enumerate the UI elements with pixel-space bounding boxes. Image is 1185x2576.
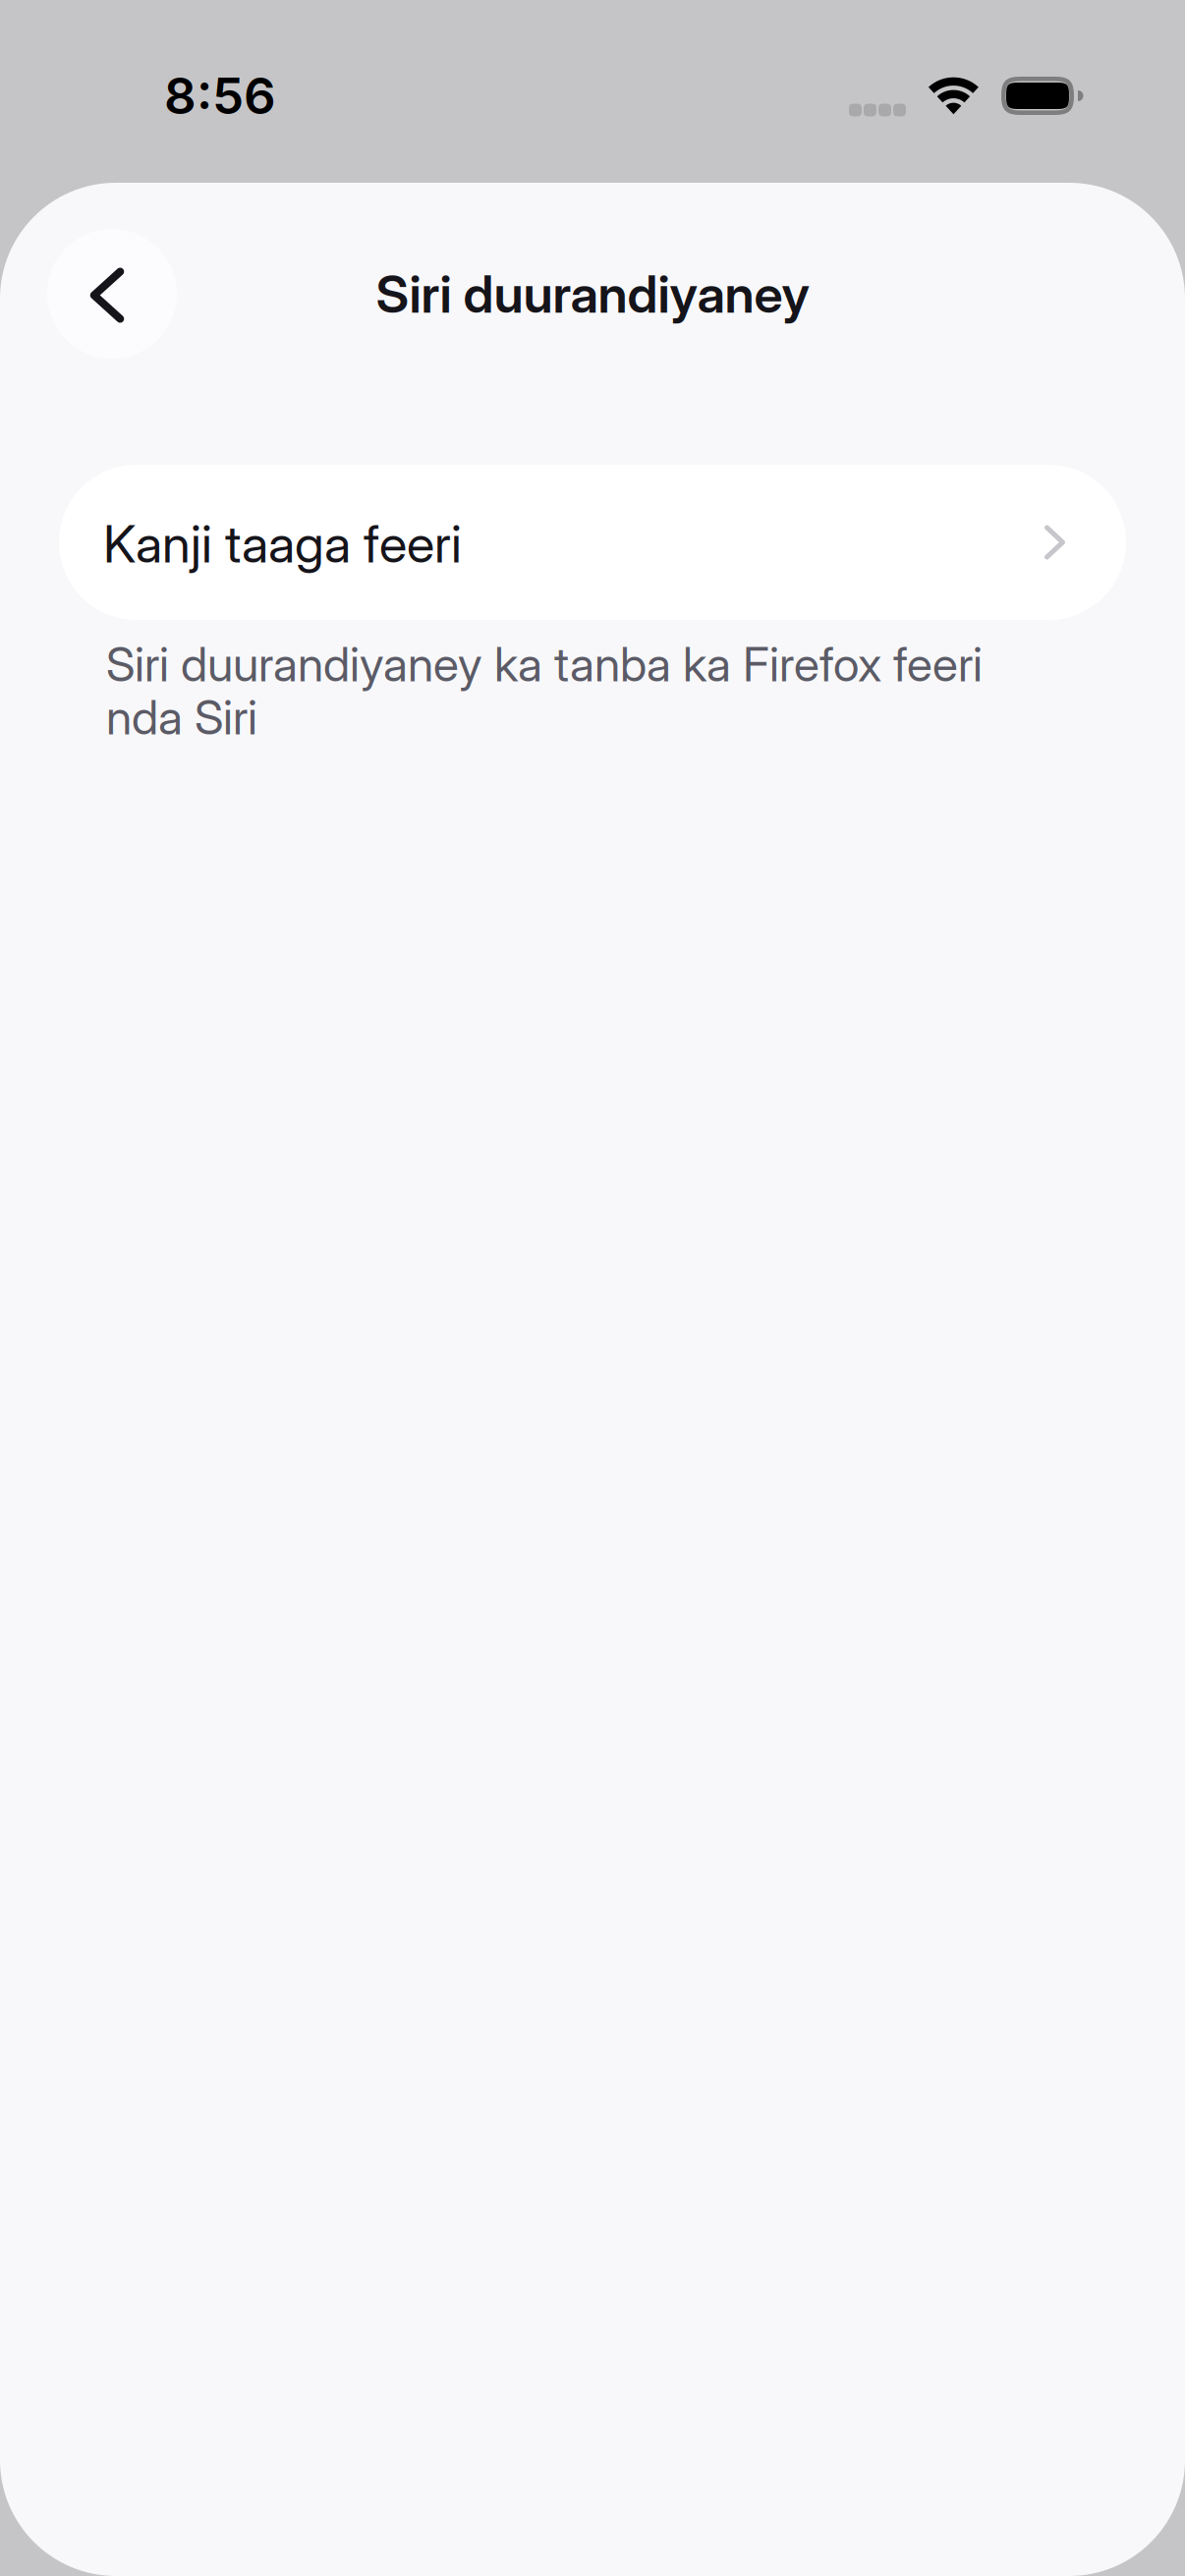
- staticText: Kanji taaga feeri: [103, 513, 462, 575]
- button[interactable]: Back: [47, 229, 177, 359]
- staticText: Siri duurandiyaney ka tanba ka Firefox f…: [106, 636, 983, 746]
- button[interactable]: Kanji taaga feeri: [59, 465, 1126, 620]
- staticText: Siri duurandiyaney: [376, 262, 809, 325]
- staticText: 8:56: [164, 65, 276, 126]
